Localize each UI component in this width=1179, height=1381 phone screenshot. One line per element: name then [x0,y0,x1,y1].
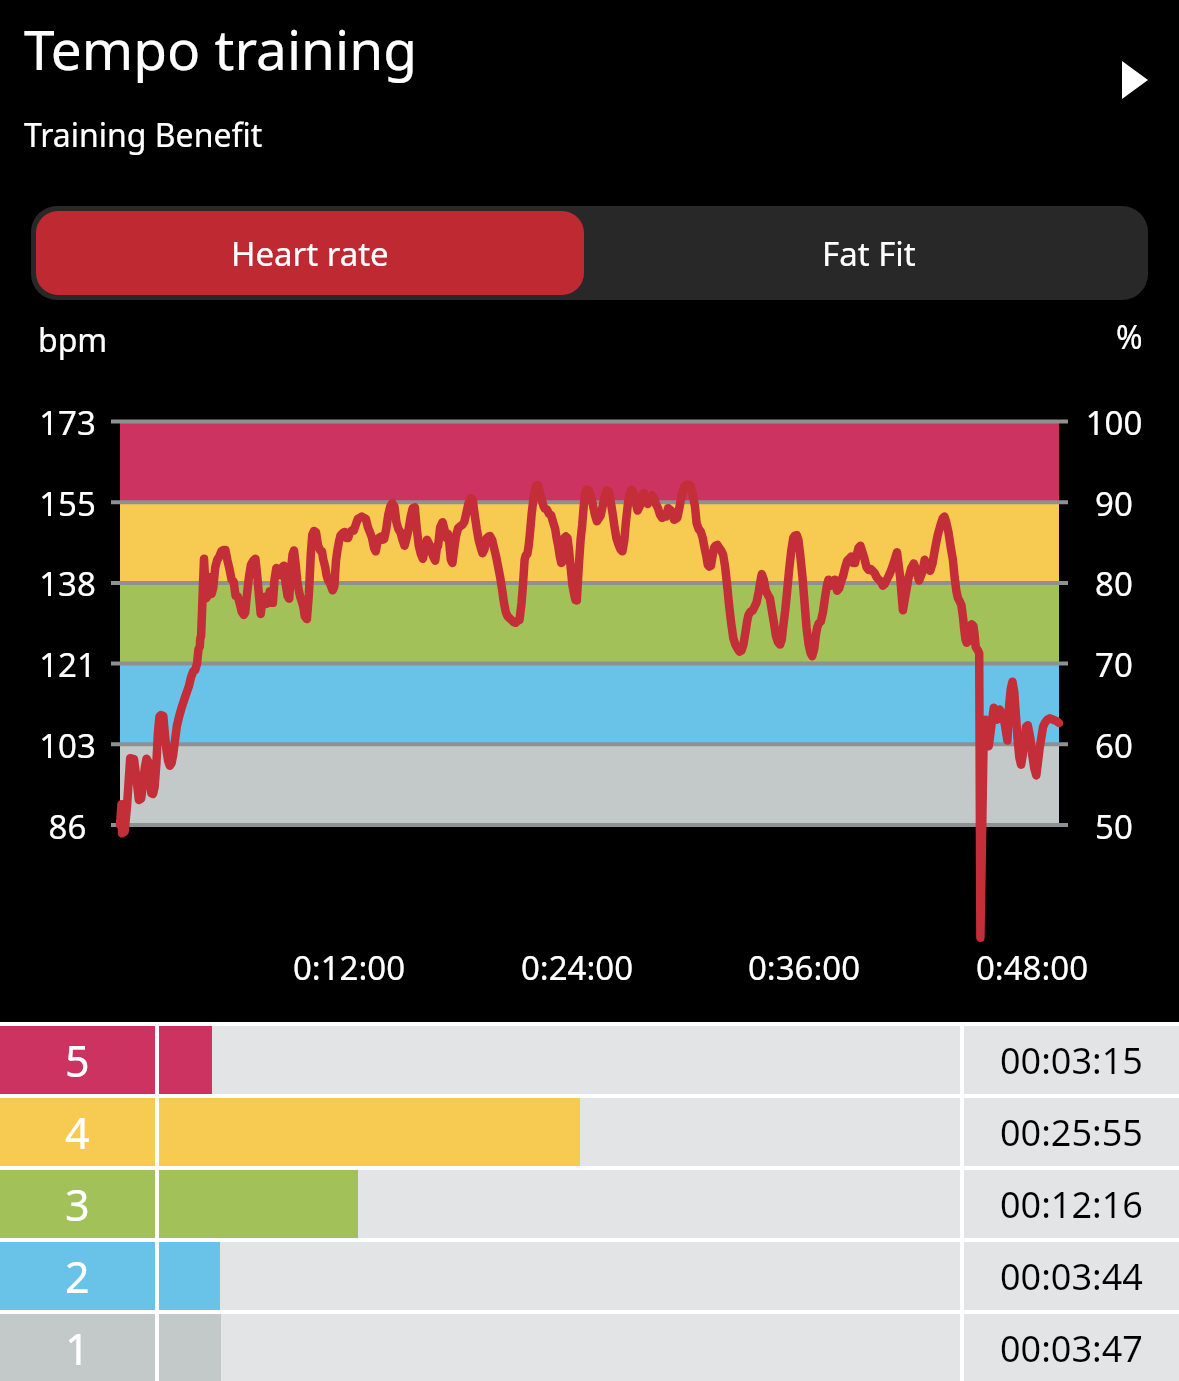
staticText: 70 [1044,642,1179,687]
staticText: 5 [65,1031,90,1090]
staticText: 00:03:15 [1000,1036,1143,1085]
button[interactable]: 2 [0,1242,1179,1310]
staticText: 155 [0,481,135,526]
staticText: bpm [38,318,108,362]
staticText: 0:12:00 [249,945,449,990]
staticText: Tempo training [24,11,418,86]
staticText: 00:25:55 [1000,1108,1143,1157]
staticText: Training Benefit [24,113,263,157]
staticText: 103 [0,723,135,768]
staticText: 0:48:00 [932,945,1132,990]
staticText: 00:03:44 [1000,1252,1143,1301]
staticText: 50 [1044,804,1179,849]
button[interactable]: Fat Fit [589,206,1148,300]
staticText: 173 [0,400,135,445]
button[interactable]: 1 [0,1314,1179,1381]
staticText: 100 [1044,400,1179,445]
button[interactable]: Heart rate [36,211,584,295]
staticText: Heart rate [231,231,389,276]
staticText: 86 [0,804,135,849]
staticText: 138 [0,561,135,606]
staticText: Fat Fit [822,231,916,276]
staticText: 00:03:47 [1000,1324,1143,1373]
staticText: 1 [65,1319,90,1378]
button[interactable]: 5 [0,1026,1179,1094]
button[interactable]: 3 [0,1170,1179,1238]
staticText: 0:24:00 [477,945,677,990]
staticText: 2 [65,1247,90,1306]
staticText: 121 [0,642,135,687]
staticText: 90 [1044,481,1179,526]
button[interactable]: Play [1103,48,1167,112]
staticText: 3 [65,1175,90,1234]
staticText: 4 [65,1103,90,1162]
staticText: 00:12:16 [1000,1180,1143,1229]
staticText: 60 [1044,723,1179,768]
staticText: 80 [1044,561,1179,606]
button[interactable]: 4 [0,1098,1179,1166]
staticText: % [1116,315,1143,359]
staticText: 0:36:00 [704,945,904,990]
